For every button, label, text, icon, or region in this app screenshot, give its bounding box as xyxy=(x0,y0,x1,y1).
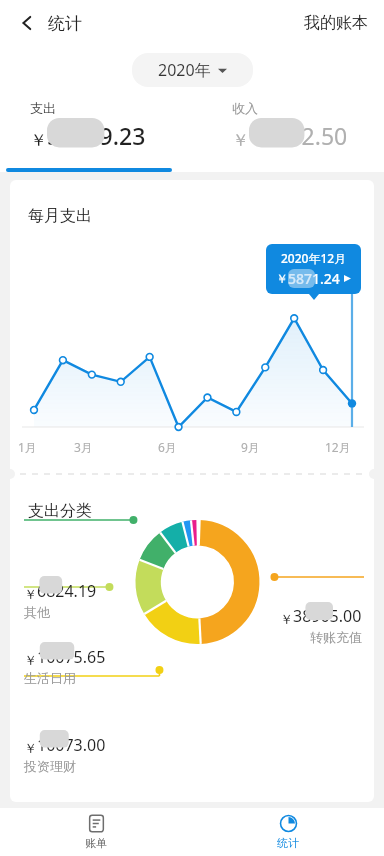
button[interactable]: 支出 xyxy=(0,94,192,172)
staticText: 投资理财 xyxy=(24,758,76,774)
button[interactable]: 账单 xyxy=(0,808,192,856)
staticText: 38905.00 xyxy=(293,605,362,627)
staticText: 1月 xyxy=(18,439,37,455)
button[interactable]: 我的账本 xyxy=(300,9,372,37)
staticText: 转账充值 xyxy=(310,629,362,645)
staticText: 支出 xyxy=(30,100,56,116)
button[interactable]: Back xyxy=(12,8,42,38)
staticText: 3月 xyxy=(74,439,93,455)
staticText: 支出分类 xyxy=(28,501,92,521)
staticText: ￥ xyxy=(30,130,47,151)
button[interactable]: 2020年 xyxy=(132,53,253,87)
staticText: 12月 xyxy=(325,439,351,455)
staticText: ￥ xyxy=(276,271,288,286)
staticText: 统计 xyxy=(48,13,82,34)
staticText: 我的账本 xyxy=(304,13,368,33)
staticText: ￥ xyxy=(24,652,37,668)
staticText: 收入 xyxy=(232,100,258,116)
staticText: ￥ xyxy=(24,740,37,756)
staticText: ￥ xyxy=(232,130,249,151)
staticText: 9月 xyxy=(241,439,260,455)
button[interactable]: 收入 xyxy=(192,94,384,172)
staticText: ￥ xyxy=(24,586,37,602)
button[interactable]: 2020年12月 xyxy=(266,244,361,294)
staticText: 账单 xyxy=(85,836,107,850)
staticText: 12132.50 xyxy=(249,120,348,151)
staticText: 每月支出 xyxy=(28,206,92,226)
staticText: 统计 xyxy=(277,836,299,850)
button[interactable]: 统计 xyxy=(192,808,384,856)
staticText: 生活日用 xyxy=(24,670,76,686)
staticText: 6824.19 xyxy=(37,580,97,602)
staticText: 2020年 xyxy=(158,59,211,81)
staticText: ￥ xyxy=(280,611,293,627)
staticText: 6月 xyxy=(158,439,177,455)
staticText: 5871.24 xyxy=(288,269,340,288)
staticText: 10075.65 xyxy=(37,646,106,668)
staticText: 其他 xyxy=(24,604,50,620)
staticText: 58789.23 xyxy=(47,120,146,151)
staticText: 10073.00 xyxy=(37,734,106,756)
staticText: 2020年12月 xyxy=(281,250,347,266)
